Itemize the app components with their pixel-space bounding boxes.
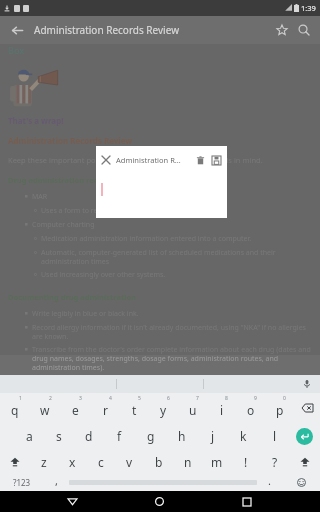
staticText: w	[40, 402, 50, 418]
staticText: m	[211, 454, 223, 470]
button[interactable]: n	[173, 449, 202, 474]
button[interactable]: Backspace	[294, 393, 320, 423]
button[interactable]: 0	[265, 393, 294, 423]
staticText: Medication administration information en…	[41, 234, 252, 244]
button[interactable]: 1	[0, 393, 30, 423]
button[interactable]: .	[257, 474, 282, 491]
staticText: Automatic, computer-generated list of sc…	[41, 248, 312, 266]
button[interactable]: 5	[120, 393, 149, 423]
staticText: Write legibly in blue or black ink.	[32, 309, 139, 319]
staticText: s	[56, 428, 62, 444]
staticText: n	[184, 454, 192, 470]
button[interactable]: g	[135, 423, 166, 449]
button[interactable]: s	[44, 423, 74, 449]
staticText: ?	[272, 454, 278, 470]
button[interactable]: Search	[293, 19, 315, 41]
button[interactable]: Home	[144, 491, 174, 512]
button[interactable]: 6	[149, 393, 178, 423]
button[interactable]: 8	[207, 393, 236, 423]
button[interactable]: l	[259, 423, 290, 449]
staticText: Used increasingly over other systems.	[41, 270, 166, 280]
button[interactable]: c	[86, 449, 115, 474]
staticText: Box	[8, 44, 25, 56]
staticText: 1:39	[301, 3, 316, 13]
staticText: k	[240, 428, 247, 444]
staticText: 1	[19, 395, 22, 402]
staticText: 8	[225, 395, 228, 402]
button[interactable]: ?	[260, 449, 289, 474]
staticText: 4	[109, 395, 112, 402]
button[interactable]: Close	[96, 150, 116, 170]
staticText: y	[160, 402, 167, 418]
staticText: Computer charting	[32, 220, 95, 230]
button[interactable]: 7	[178, 393, 207, 423]
button[interactable]: j	[197, 423, 228, 449]
button[interactable]: ?123	[0, 474, 44, 491]
staticText: 7	[196, 395, 199, 402]
button[interactable]: Recents	[232, 491, 262, 512]
button[interactable]: Shift	[289, 449, 320, 474]
staticText: 0	[283, 395, 286, 402]
button[interactable]: Back	[6, 19, 28, 41]
staticText: Administration Records Review	[8, 135, 133, 146]
staticText: Documenting drug administration	[8, 292, 136, 302]
staticText: Record allergy information if it isn't a…	[32, 323, 312, 341]
staticText: !	[244, 454, 248, 470]
button[interactable]: Save	[209, 151, 224, 169]
staticText: l	[273, 428, 277, 444]
staticText: b	[155, 454, 163, 470]
staticText: a	[26, 428, 33, 444]
button[interactable]: h	[166, 423, 197, 449]
button[interactable]: 9	[236, 393, 265, 423]
button[interactable]: 4	[90, 393, 120, 423]
button[interactable]: z	[30, 449, 58, 474]
button[interactable]: Delete	[191, 151, 209, 169]
button[interactable]: !	[231, 449, 260, 474]
staticText: 6	[167, 395, 170, 402]
staticText: p	[276, 402, 284, 418]
button[interactable]: f	[104, 423, 135, 449]
staticText: o	[247, 402, 255, 418]
button[interactable]: Voice input	[300, 377, 314, 391]
staticText: 3	[79, 395, 82, 402]
button[interactable]: Emoji	[282, 474, 320, 491]
button[interactable]: d	[74, 423, 104, 449]
button[interactable]: Enter	[296, 428, 313, 445]
staticText: f	[117, 428, 122, 444]
staticText: 9	[254, 395, 257, 402]
staticText: Administration R…	[116, 155, 191, 165]
staticText: 2	[49, 395, 52, 402]
button[interactable]: ,	[44, 474, 69, 491]
staticText: u	[189, 402, 197, 418]
button[interactable]: m	[202, 449, 231, 474]
button[interactable]: x	[58, 449, 86, 474]
staticText: Drug administration record systems	[8, 175, 143, 185]
staticText: .	[268, 473, 271, 488]
staticText: ,	[55, 473, 58, 488]
staticText: Transcribe from the doctor's order compl…	[32, 345, 312, 372]
staticText: j	[211, 428, 215, 444]
staticText: h	[178, 428, 186, 444]
staticText: q	[11, 402, 19, 418]
button[interactable]: Back	[57, 491, 87, 512]
button[interactable]: Favorite	[271, 19, 293, 41]
button[interactable]: 2	[30, 393, 60, 423]
staticText: That's a wrap!	[8, 115, 64, 126]
button[interactable]: b	[144, 449, 173, 474]
staticText: Keep these important points about drug a…	[8, 155, 263, 165]
button[interactable]: Shift	[0, 449, 30, 474]
staticText: 5	[138, 395, 141, 402]
staticText: MAR	[32, 192, 48, 202]
staticText: r	[103, 402, 108, 418]
button[interactable]: v	[115, 449, 144, 474]
staticText: Administration Records Review	[34, 23, 179, 37]
button[interactable]: k	[228, 423, 259, 449]
staticText: ?123	[13, 477, 31, 488]
staticText: g	[147, 428, 155, 444]
button[interactable]: a	[14, 423, 44, 449]
button[interactable]: 3	[60, 393, 90, 423]
staticText: Immediately document the times of all ad…	[32, 390, 215, 400]
